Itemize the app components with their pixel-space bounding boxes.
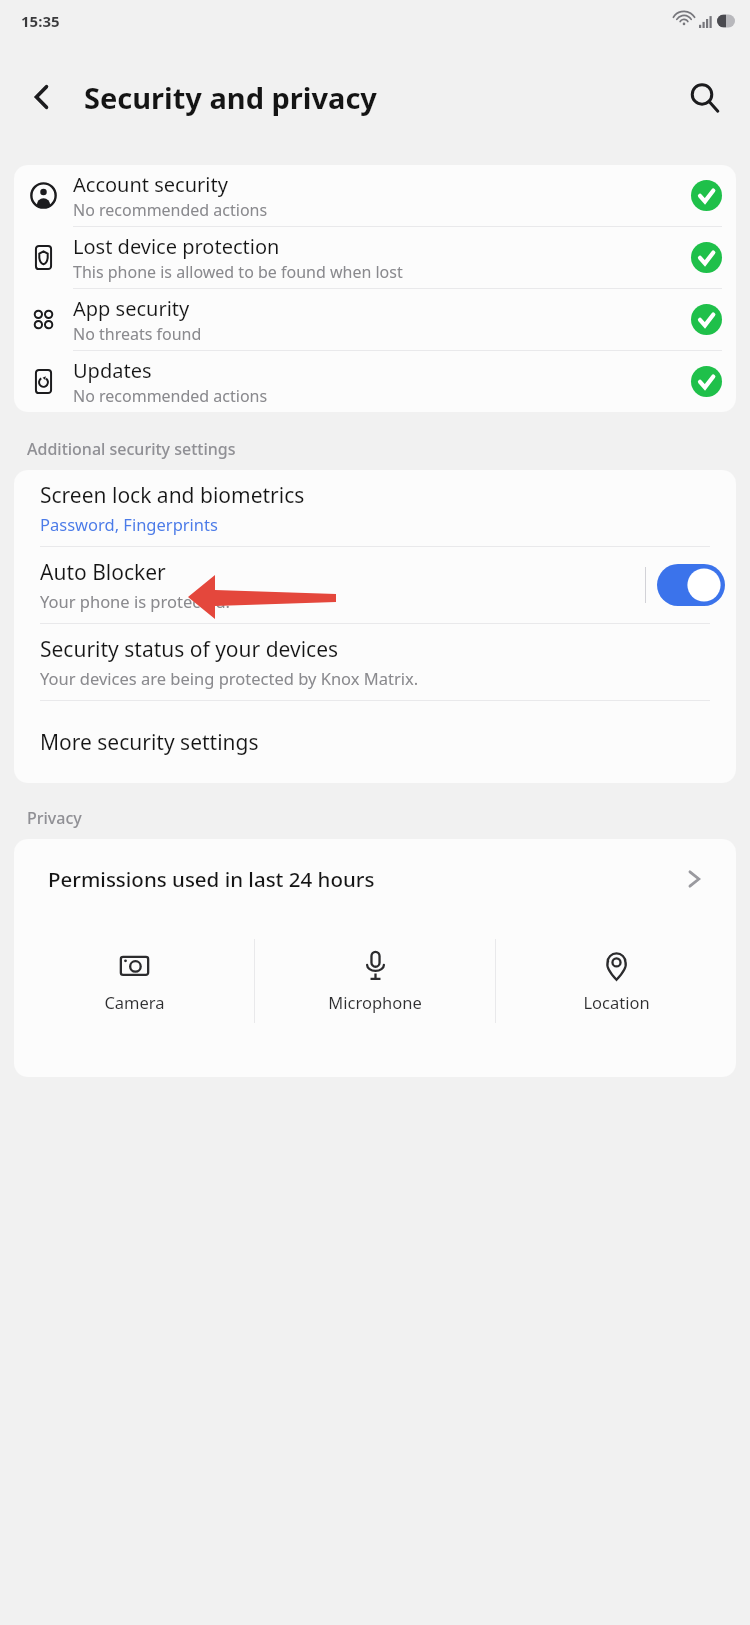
staticText: Security and privacy (84, 78, 377, 117)
button[interactable]: Microphone (255, 919, 495, 1043)
staticText: Privacy (27, 807, 82, 829)
staticText: Security status of your devices (40, 635, 339, 664)
staticText: More security settings (40, 728, 259, 757)
staticText: Location (583, 991, 650, 1013)
staticText: No threats found (73, 323, 202, 345)
staticText: Your phone is protected. (40, 590, 230, 612)
staticText: No recommended actions (73, 199, 268, 221)
staticText: Updates (73, 357, 152, 384)
staticText: Camera (104, 991, 165, 1013)
button[interactable]: Lost device protection (14, 227, 736, 288)
staticText: Password, Fingerprints (40, 513, 218, 535)
staticText: Microphone (328, 991, 422, 1013)
button[interactable]: Security status of your devices (14, 624, 736, 700)
button[interactable]: Permissions used in last 24 hours (14, 839, 736, 919)
staticText: 15:35 (21, 11, 60, 31)
button[interactable]: More security settings (14, 701, 736, 783)
button[interactable]: Account security (14, 165, 736, 226)
button[interactable]: Location (496, 919, 736, 1043)
button[interactable]: Back (8, 63, 76, 131)
button[interactable]: Search (672, 65, 736, 129)
button[interactable]: Auto Blocker (14, 547, 736, 623)
staticText: No recommended actions (73, 385, 268, 407)
button[interactable]: Camera (14, 919, 254, 1043)
staticText: Screen lock and biometrics (40, 481, 305, 510)
staticText: Additional security settings (27, 438, 236, 460)
staticText: App security (73, 295, 190, 322)
button[interactable]: App security (14, 289, 736, 350)
staticText: Lost device protection (73, 233, 280, 260)
button[interactable]: Updates (14, 351, 736, 412)
button[interactable]: Auto Blocker toggle (646, 547, 736, 623)
button[interactable]: Screen lock and biometrics (14, 470, 736, 546)
staticText: Auto Blocker (40, 558, 166, 587)
staticText: Permissions used in last 24 hours (48, 865, 682, 893)
staticText: Account security (73, 171, 228, 198)
staticText: Your devices are being protected by Knox… (40, 667, 419, 689)
staticText: This phone is allowed to be found when l… (73, 261, 403, 283)
